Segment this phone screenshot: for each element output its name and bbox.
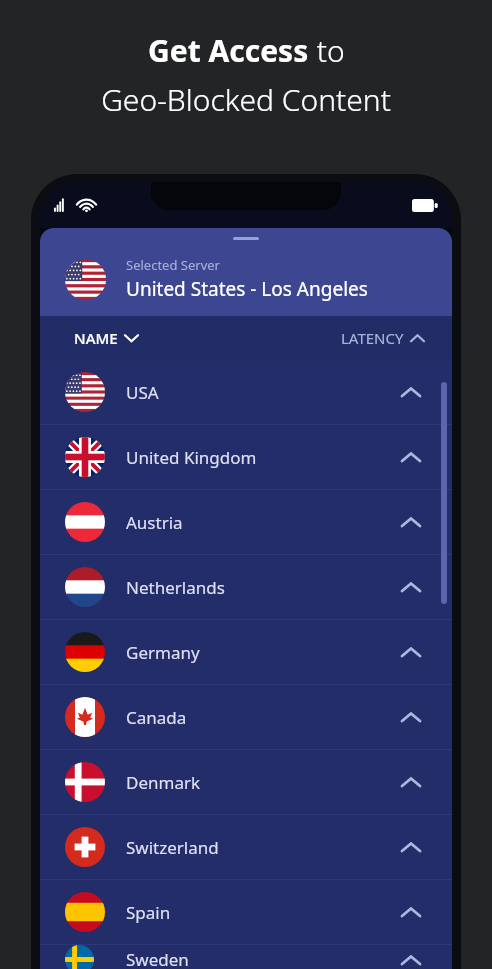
button[interactable]: Sweden (40, 945, 452, 969)
staticText: Canada (126, 706, 187, 729)
staticText: Selected Server (126, 256, 220, 274)
staticText: Sweden (126, 948, 189, 969)
other: Expand Spain (398, 899, 424, 925)
button[interactable]: Switzerland (40, 815, 452, 879)
staticText: NAME (74, 328, 118, 348)
button[interactable]: USA (40, 360, 452, 424)
button[interactable]: Selected Server (40, 228, 452, 316)
staticText: Geo-Blocked Content (101, 79, 391, 120)
staticText: to (309, 30, 345, 71)
staticText: LATENCY (341, 328, 404, 348)
staticText: United Kingdom (126, 446, 257, 469)
staticText: Spain (126, 901, 171, 924)
other: Expand Sweden (398, 947, 424, 969)
button[interactable]: Canada (40, 685, 452, 749)
button[interactable]: NAME (74, 328, 138, 348)
staticText: Get Access (148, 30, 309, 71)
other: Expand United Kingdom (398, 444, 424, 470)
button[interactable]: Germany (40, 620, 452, 684)
button[interactable]: Austria (40, 490, 452, 554)
staticText: Germany (126, 641, 200, 664)
other: Expand Austria (398, 509, 424, 535)
staticText: United States - Los Angeles (126, 276, 368, 302)
other: Expand Netherlands (398, 574, 424, 600)
button[interactable]: LATENCY (341, 328, 424, 348)
button[interactable]: Netherlands (40, 555, 452, 619)
staticText: Austria (126, 511, 183, 534)
staticText: Switzerland (126, 836, 219, 859)
staticText: Netherlands (126, 576, 225, 599)
other: Expand Canada (398, 704, 424, 730)
other: Expand USA (398, 379, 424, 405)
other: Expand Germany (398, 639, 424, 665)
other: Expand Denmark (398, 769, 424, 795)
staticText: USA (126, 381, 159, 404)
staticText: Denmark (126, 771, 201, 794)
button[interactable]: Denmark (40, 750, 452, 814)
button[interactable]: Spain (40, 880, 452, 944)
other: Expand Switzerland (398, 834, 424, 860)
button[interactable]: United Kingdom (40, 425, 452, 489)
